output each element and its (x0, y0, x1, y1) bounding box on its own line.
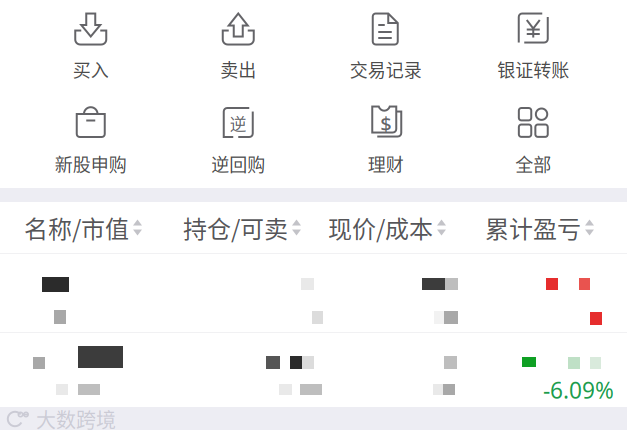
staticText: 交易记录 (350, 56, 422, 82)
staticText: 新股申购 (55, 150, 127, 177)
staticText: 累计盈亏 (485, 210, 581, 245)
staticText: $ (380, 110, 391, 137)
button[interactable]: 新股申购 (17, 93, 164, 183)
button[interactable]: 交易记录 (312, 0, 459, 89)
staticText: 名称/市值 (24, 210, 129, 245)
staticText: 持仓/可卖 (183, 210, 288, 245)
staticText: 全部 (515, 150, 551, 177)
staticText: 逆回购 (211, 150, 265, 177)
button[interactable]: 买入 (17, 0, 164, 89)
button[interactable]: 卖出 (164, 0, 312, 89)
button[interactable]: 持仓/可卖 (183, 202, 328, 253)
button[interactable]: 银证转账 (459, 0, 607, 89)
button[interactable]: 全部 (459, 93, 607, 183)
button[interactable]: 逆 (164, 93, 312, 183)
button[interactable]: $ (312, 93, 459, 183)
staticText: 理财 (368, 150, 404, 177)
button[interactable]: 名称/市值 (0, 202, 183, 253)
staticText: 现价/成本 (328, 210, 433, 245)
button[interactable]: 累计盈亏 (485, 202, 627, 253)
button[interactable]: 现价/成本 (328, 202, 485, 253)
staticText: 买入 (73, 56, 109, 82)
staticText: 大数跨境 (36, 404, 116, 430)
staticText: 逆 (230, 111, 247, 135)
staticText: -6.09% (543, 375, 614, 405)
staticText: 银证转账 (497, 56, 569, 82)
staticText: 卖出 (220, 56, 256, 82)
